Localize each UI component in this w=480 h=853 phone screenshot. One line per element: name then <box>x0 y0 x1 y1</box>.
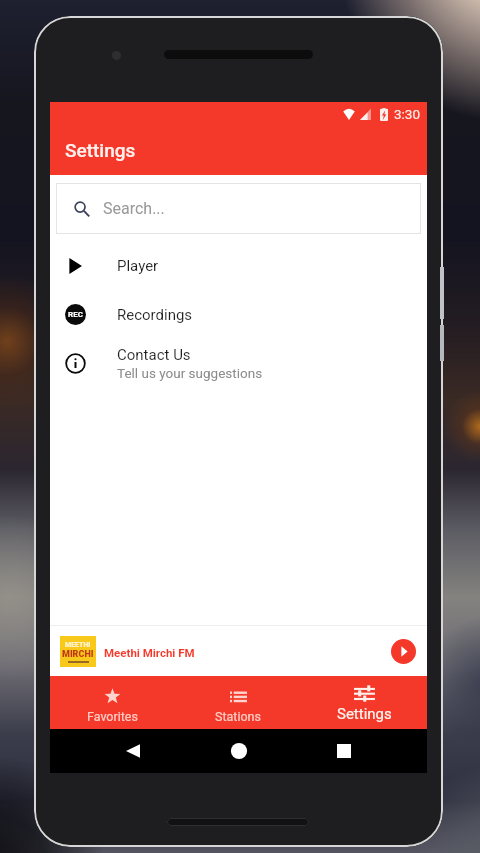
button[interactable]: Play <box>391 639 416 664</box>
staticText: MIRCHI <box>62 649 94 660</box>
staticText: Favorites <box>87 709 138 724</box>
staticText: REC <box>68 310 83 319</box>
staticText: Player <box>117 257 159 275</box>
staticText: Recordings <box>117 306 193 324</box>
button[interactable]: Back <box>118 736 148 766</box>
button[interactable]: Stations <box>175 676 301 729</box>
button[interactable]: Contact Us <box>50 339 427 388</box>
button[interactable]: MEETHI <box>50 626 427 676</box>
staticText: Contact Us <box>117 346 191 364</box>
staticText: Stations <box>215 709 261 724</box>
staticText: Search... <box>103 199 165 218</box>
staticText: 3:30 <box>394 106 421 122</box>
button[interactable]: Recents <box>329 736 359 766</box>
button[interactable]: Home <box>224 736 254 766</box>
staticText: Settings <box>65 139 136 161</box>
button[interactable]: Player <box>50 241 427 290</box>
button[interactable]: REC <box>50 290 427 339</box>
button[interactable]: Favorites <box>50 676 175 729</box>
button[interactable]: Search... <box>56 183 421 234</box>
staticText: Settings <box>337 705 392 723</box>
staticText: Tell us your suggestions <box>117 365 263 381</box>
staticText: MEETHI <box>65 641 91 649</box>
button[interactable]: Settings <box>301 676 427 729</box>
staticText: Meethi Mirchi FM <box>104 646 195 659</box>
